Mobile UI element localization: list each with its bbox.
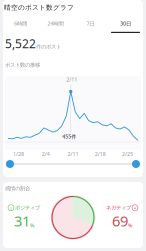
staticText: 69 xyxy=(112,211,128,230)
staticText: 2/25 xyxy=(122,150,133,158)
staticText: 感情の割合 xyxy=(5,185,30,192)
staticText: % xyxy=(30,222,34,229)
staticText: 6時間 xyxy=(14,20,27,27)
staticText: 2/18 xyxy=(95,150,106,158)
button[interactable]: Range end xyxy=(132,160,140,168)
staticText: 2/4 xyxy=(42,150,50,158)
staticText: 件のポスト xyxy=(36,43,61,50)
staticText: 5,522 xyxy=(5,35,36,51)
staticText: 2/11 xyxy=(66,76,77,83)
staticText: 晴空のポスト数グラフ xyxy=(4,3,74,12)
staticText: 1/28 xyxy=(13,150,24,158)
button[interactable]: 6時間 xyxy=(3,15,38,33)
staticText: ネガティブ xyxy=(106,204,131,211)
staticText: % xyxy=(128,222,132,229)
staticText: ポスト数の推移 xyxy=(5,62,40,68)
button[interactable]: Range start xyxy=(6,160,14,168)
staticText: 7日 xyxy=(86,20,94,27)
staticText: 455件 xyxy=(62,133,76,140)
staticText: 31 xyxy=(14,211,30,230)
button[interactable]: 30日 xyxy=(108,15,143,33)
staticText: ポジティブ xyxy=(15,204,40,211)
staticText: 24時間 xyxy=(47,20,63,27)
staticText: 30日 xyxy=(120,20,131,27)
button[interactable]: 24時間 xyxy=(38,15,73,33)
button[interactable]: 7日 xyxy=(73,15,108,33)
staticText: 2/11 xyxy=(67,150,78,158)
